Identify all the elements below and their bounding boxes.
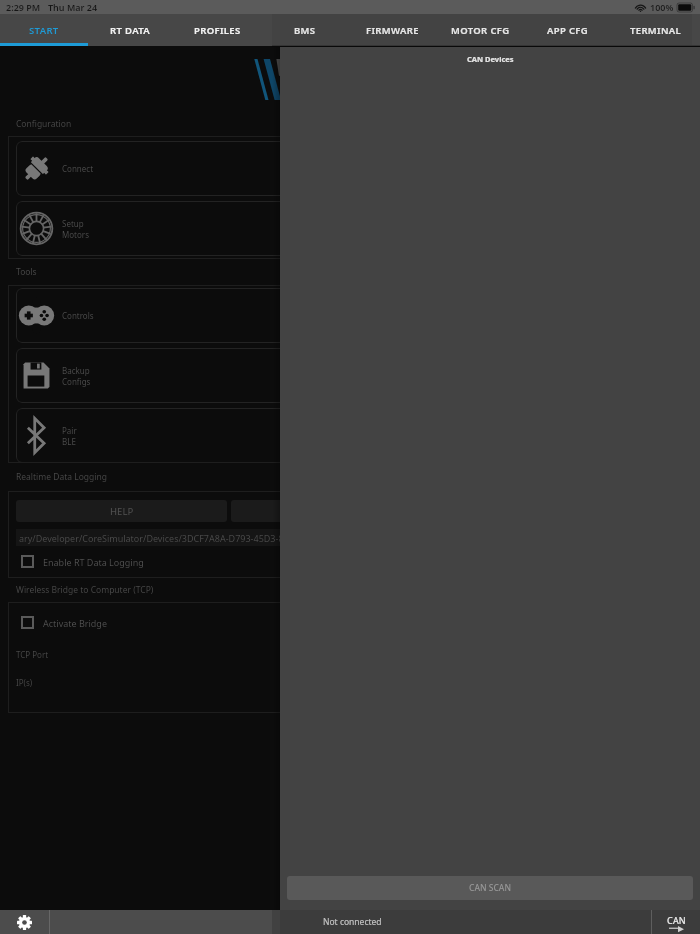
staticText: Realtime Data Logging [16,471,108,483]
button[interactable]: BMS [261,14,348,46]
staticText: 100% [650,1,674,13]
button[interactable] [231,500,700,522]
staticText: PROFILES [194,24,241,37]
staticText: Not connected [323,916,382,928]
button[interactable]: HELP [16,500,227,522]
staticText: Tools [16,266,37,278]
staticText: 2:29 PM [6,1,41,13]
staticText: Motors [62,229,89,240]
staticText: Configs [62,376,91,387]
staticText: Activate Bridge [43,617,107,629]
staticText: BLE [62,436,76,447]
staticText: TERMINAL [630,24,682,37]
staticText: HELP [110,505,134,518]
button[interactable]: START [0,14,87,46]
button[interactable]: FIRMWARE [348,14,436,46]
button[interactable]: APP CFG [524,14,612,46]
staticText: APP CFG [547,24,589,37]
staticText: CAN [667,914,686,926]
staticText: Setup [62,218,84,229]
staticText: START [29,24,59,37]
staticText: Wireless Bridge to Computer (TCP) [16,584,154,596]
staticText: MOTOR CFG [451,24,510,37]
button[interactable]: Pair [16,408,700,463]
button[interactable]: Controls [16,288,700,343]
staticText: ary/Developer/CoreSimulator/Devices/3DCF… [19,532,318,544]
button[interactable]: Backup [16,348,700,403]
button[interactable]: Activate Bridge [21,616,107,629]
staticText: BMS [294,24,316,37]
button[interactable]: PROFILES [174,14,261,46]
button[interactable]: CAN SCAN [287,876,693,900]
staticText: Configuration [16,118,72,130]
button[interactable]: MOTOR CFG [436,14,524,46]
staticText: TCP Port [16,649,49,660]
staticText: FIRMWARE [366,24,419,37]
staticText: RT DATA [110,24,151,37]
staticText: Pair [62,425,77,436]
staticText: CAN SCAN [469,882,512,894]
button[interactable]: Connect [16,141,700,196]
staticText: Backup [62,365,90,376]
staticText: CAN Devices [467,54,514,64]
staticText: Thu Mar 24 [48,1,98,13]
staticText: Connect [62,163,94,174]
button[interactable]: Enable RT Data Logging [21,555,144,568]
button[interactable]: TERMINAL [612,14,700,46]
button[interactable]: RT DATA [87,14,174,46]
staticText: Controls [62,310,94,321]
button[interactable]: CAN forward [652,910,700,934]
button[interactable]: Settings [0,910,49,934]
button[interactable]: Setup [16,201,700,256]
staticText: Enable RT Data Logging [43,556,144,568]
staticText: IP(s) [16,677,33,688]
